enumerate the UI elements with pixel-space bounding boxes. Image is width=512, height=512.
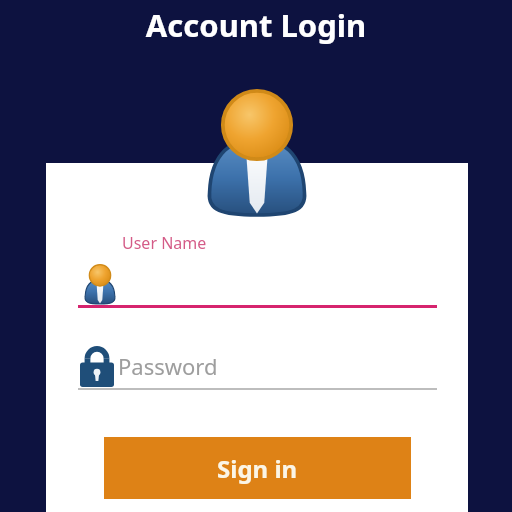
button[interactable] bbox=[46, 263, 468, 308]
other: User avatar bbox=[206, 89, 308, 215]
staticText: Account Login bbox=[0, 4, 512, 46]
staticText: Sign in bbox=[217, 452, 298, 485]
staticText: Password bbox=[118, 351, 218, 381]
other: Password bbox=[80, 346, 114, 387]
button[interactable]: Sign in bbox=[104, 437, 411, 499]
button[interactable]: Password bbox=[46, 344, 468, 390]
staticText: User Name bbox=[122, 232, 207, 254]
